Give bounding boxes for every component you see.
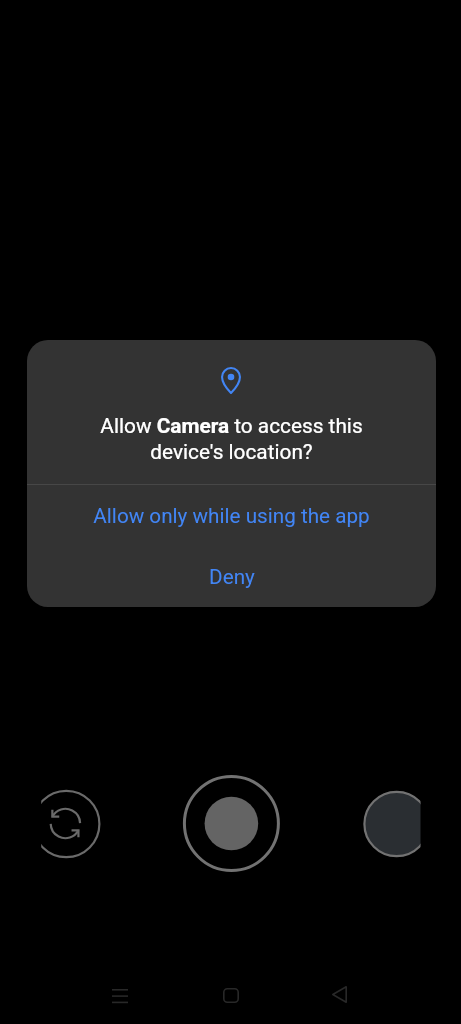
button[interactable]: Allow only while using the app	[27, 485, 436, 547]
button[interactable]: Recent apps	[80, 969, 160, 1023]
button[interactable]: Gallery	[360, 788, 432, 860]
staticText: Deny	[209, 565, 255, 589]
staticText: Allow Camera to access this device's loc…	[89, 414, 374, 465]
button[interactable]: Switch camera	[26, 784, 106, 864]
button[interactable]: Take photo	[183, 775, 280, 872]
button[interactable]: Back	[299, 967, 379, 1021]
staticText: Allow only while using the app	[93, 504, 370, 528]
button[interactable]: Deny	[27, 547, 436, 607]
button[interactable]: Home	[191, 968, 271, 1022]
